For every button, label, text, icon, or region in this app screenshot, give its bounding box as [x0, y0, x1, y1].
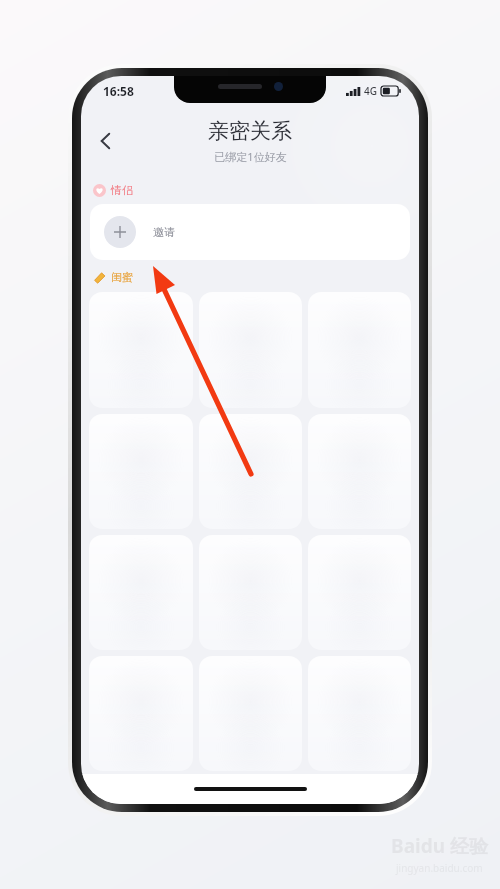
button[interactable] — [199, 292, 302, 408]
staticText: 亲密关系 — [208, 118, 292, 144]
button[interactable]: 邀请 — [90, 204, 410, 260]
staticText: Baidu 经验 — [391, 833, 488, 859]
button[interactable]: Back — [85, 120, 127, 162]
staticText: 16:58 — [103, 83, 134, 99]
staticText: 情侣 — [111, 183, 133, 197]
staticText: 4G — [364, 84, 377, 98]
staticText: 已绑定1位好友 — [214, 149, 287, 164]
button[interactable] — [89, 292, 193, 408]
staticText: 闺蜜 — [111, 270, 133, 284]
button[interactable] — [199, 414, 302, 529]
staticText: 邀请 — [153, 225, 175, 239]
staticText: jingyan.baidu.com — [396, 861, 483, 875]
